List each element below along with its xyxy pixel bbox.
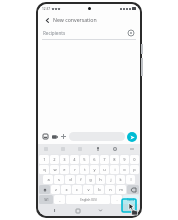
- staticText: z: [55, 187, 57, 192]
- button[interactable]: English (US): [66, 195, 110, 204]
- staticText: g: [89, 177, 92, 182]
- button[interactable]: [69, 132, 125, 141]
- staticText: 12:37: [42, 7, 51, 11]
- staticText: o: [123, 167, 126, 172]
- staticText: t: [84, 167, 86, 172]
- button[interactable]: k: [116, 175, 125, 184]
- button[interactable]: gif: [59, 145, 67, 153]
- button[interactable]: Home: [73, 206, 82, 215]
- button[interactable]: 9: [120, 155, 129, 164]
- button[interactable]: 1: [39, 155, 49, 164]
- button[interactable]: c: [72, 185, 82, 194]
- button[interactable]: Shift: [39, 185, 50, 194]
- staticText: 3: [63, 157, 66, 162]
- staticText: !#1: [44, 198, 49, 202]
- staticText: a: [47, 177, 50, 182]
- button[interactable]: settings: [111, 145, 119, 153]
- button[interactable]: mic: [94, 145, 102, 153]
- button[interactable]: o: [120, 165, 129, 174]
- staticText: d: [69, 177, 72, 182]
- staticText: p: [133, 167, 136, 172]
- staticText: u: [103, 167, 106, 172]
- button[interactable]: w: [50, 165, 59, 174]
- staticText: Recipients: [43, 30, 126, 36]
- button[interactable]: i: [110, 165, 119, 174]
- button[interactable]: l: [126, 175, 135, 184]
- staticText: m: [119, 187, 123, 192]
- button[interactable]: Back: [96, 206, 105, 215]
- button[interactable]: 8: [110, 155, 119, 164]
- button[interactable]: Camera: [50, 132, 59, 141]
- staticText: 0: [133, 157, 136, 162]
- button[interactable]: Hide keyboard: [122, 199, 136, 212]
- staticText: h: [99, 177, 102, 182]
- button[interactable]: 3: [60, 155, 69, 164]
- button[interactable]: z: [51, 185, 60, 194]
- button[interactable]: ,: [54, 195, 65, 204]
- staticText: q: [43, 167, 46, 172]
- button[interactable]: Add recipient: [126, 28, 135, 37]
- button[interactable]: Send: [127, 132, 137, 142]
- button[interactable]: f: [76, 175, 85, 184]
- button[interactable]: 2: [50, 155, 59, 164]
- button[interactable]: Back: [42, 15, 52, 25]
- button[interactable]: y: [90, 165, 99, 174]
- button[interactable]: j: [106, 175, 115, 184]
- staticText: English (US): [80, 198, 97, 202]
- button[interactable]: t: [80, 165, 89, 174]
- staticText: 2: [53, 157, 56, 162]
- staticText: 8: [113, 157, 116, 162]
- button[interactable]: Recents: [51, 206, 60, 215]
- staticText: 7: [103, 157, 106, 162]
- button[interactable]: q: [39, 165, 49, 174]
- button[interactable]: v: [83, 185, 93, 194]
- button[interactable]: s: [54, 175, 64, 184]
- button[interactable]: b: [94, 185, 104, 194]
- staticText: 4: [73, 157, 76, 162]
- button[interactable]: 6: [90, 155, 99, 164]
- staticText: .: [116, 197, 118, 202]
- button[interactable]: Send: [123, 195, 139, 204]
- staticText: ,: [59, 197, 61, 202]
- button[interactable]: g: [86, 175, 95, 184]
- button[interactable]: 0: [130, 155, 139, 164]
- staticText: k: [119, 177, 122, 182]
- staticText: l: [130, 177, 132, 182]
- button[interactable]: n: [105, 185, 115, 194]
- staticText: i: [114, 167, 116, 172]
- staticText: e: [63, 167, 66, 172]
- staticText: x: [65, 187, 68, 192]
- button[interactable]: u: [100, 165, 109, 174]
- staticText: b: [98, 187, 101, 192]
- button[interactable]: 4: [70, 155, 79, 164]
- staticText: Send: [127, 198, 135, 202]
- button[interactable]: Backspace: [127, 185, 139, 194]
- staticText: s: [58, 177, 60, 182]
- staticText: v: [87, 187, 90, 192]
- button[interactable]: x: [61, 185, 71, 194]
- button[interactable]: sticker: [42, 145, 50, 153]
- button[interactable]: emoji: [76, 145, 84, 153]
- button[interactable]: more: [128, 145, 136, 153]
- button[interactable]: e: [60, 165, 69, 174]
- button[interactable]: 5: [80, 155, 89, 164]
- button[interactable]: a: [43, 175, 53, 184]
- button[interactable]: h: [96, 175, 105, 184]
- button[interactable]: .: [111, 195, 122, 204]
- button[interactable]: p: [130, 165, 139, 174]
- staticText: 9: [123, 157, 126, 162]
- staticText: c: [76, 187, 78, 192]
- staticText: j: [110, 177, 112, 182]
- staticText: 6: [93, 157, 96, 162]
- button[interactable]: r: [70, 165, 79, 174]
- staticText: 1: [43, 157, 46, 162]
- button[interactable]: Add attachment: [59, 132, 68, 141]
- button[interactable]: d: [65, 175, 75, 184]
- button[interactable]: 7: [100, 155, 109, 164]
- staticText: New conversation: [53, 16, 97, 23]
- button[interactable]: m: [116, 185, 126, 194]
- button[interactable]: Gallery: [41, 132, 50, 141]
- staticText: r: [74, 167, 76, 172]
- button[interactable]: !#1: [39, 195, 53, 204]
- staticText: f: [80, 177, 82, 182]
